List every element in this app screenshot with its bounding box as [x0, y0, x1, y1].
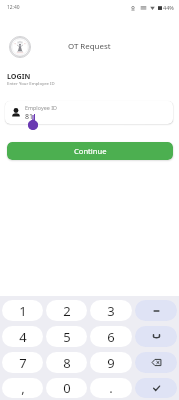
staticText: 9	[107, 354, 115, 372]
staticText: 3	[107, 302, 115, 320]
staticText: 4	[19, 328, 27, 346]
staticText: 0	[63, 379, 71, 397]
staticText: ,	[21, 379, 25, 397]
staticText: OT Request	[68, 41, 111, 52]
staticText: Enter Your Employee ID	[7, 80, 55, 86]
staticText: 44%	[163, 4, 174, 11]
button[interactable]: 2	[46, 300, 87, 321]
staticText: 12:40	[7, 4, 20, 11]
staticText: LOGIN	[7, 71, 31, 81]
staticText: 6	[107, 328, 115, 346]
button[interactable]: 9	[90, 352, 132, 373]
button[interactable]: Backspace	[135, 352, 177, 373]
button[interactable]: Enter	[135, 378, 177, 398]
staticText: .	[109, 379, 113, 397]
button[interactable]: 6	[90, 326, 132, 347]
staticText: Continue	[74, 146, 107, 156]
staticText: 5	[63, 328, 71, 346]
button[interactable]: Minus	[135, 300, 177, 321]
button[interactable]: 3	[90, 300, 132, 321]
button[interactable]: 7	[2, 352, 43, 373]
button[interactable]: 5	[46, 326, 87, 347]
button[interactable]: 4	[2, 326, 43, 347]
button[interactable]: 1	[2, 300, 43, 321]
staticText: 8	[63, 354, 71, 372]
button[interactable]: 0	[46, 378, 87, 398]
button[interactable]: 8	[46, 352, 87, 373]
button[interactable]: Continue	[7, 142, 173, 160]
button[interactable]: Hide keyboard	[135, 326, 177, 347]
staticText: 81	[25, 112, 34, 122]
staticText: 1	[19, 302, 27, 320]
button[interactable]: .	[90, 378, 132, 398]
button[interactable]: ,	[2, 378, 43, 398]
button[interactable]: Employee ID	[5, 101, 173, 124]
staticText: 7	[19, 354, 27, 372]
staticText: Employee ID	[25, 104, 57, 111]
staticText: 2	[63, 302, 71, 320]
